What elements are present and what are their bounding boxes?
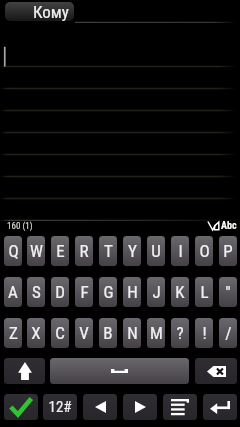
button[interactable]: / xyxy=(219,318,237,348)
button[interactable]: X xyxy=(27,318,45,348)
button[interactable]: N xyxy=(123,318,141,348)
button[interactable]: T xyxy=(99,236,117,266)
button[interactable]: Send xyxy=(4,394,38,420)
button[interactable]: W xyxy=(27,236,45,266)
staticText: Y xyxy=(128,241,137,261)
button[interactable]: " xyxy=(219,277,237,307)
staticText: U xyxy=(151,241,161,261)
button[interactable]: H xyxy=(123,277,141,307)
button[interactable]: M xyxy=(147,318,165,348)
staticText: L xyxy=(200,282,209,302)
button[interactable]: Enter xyxy=(203,394,237,420)
button[interactable]: J xyxy=(147,277,165,307)
staticText: M xyxy=(150,323,163,343)
staticText: 160 (1) xyxy=(7,221,33,232)
button[interactable]: O xyxy=(195,236,213,266)
button[interactable]: Menu xyxy=(163,394,197,420)
staticText: Кому xyxy=(33,2,69,21)
button[interactable]: D xyxy=(51,277,69,307)
button[interactable]: Y xyxy=(123,236,141,266)
button[interactable]: G xyxy=(99,277,117,307)
staticText: W xyxy=(30,241,43,261)
button[interactable]: S xyxy=(27,277,45,307)
staticText: ? xyxy=(176,323,184,343)
staticText: / xyxy=(225,323,232,343)
button[interactable]: K xyxy=(171,277,189,307)
button[interactable]: Cursor right xyxy=(123,394,157,420)
staticText: X xyxy=(31,323,41,343)
button[interactable]: 12# xyxy=(43,394,77,420)
button[interactable]: ? xyxy=(171,318,189,348)
staticText: T xyxy=(104,241,113,261)
button[interactable]: Backspace xyxy=(195,358,237,384)
button[interactable]: B xyxy=(99,318,117,348)
button[interactable]: R xyxy=(75,236,93,266)
staticText: I xyxy=(178,241,183,261)
button[interactable]: Q xyxy=(4,236,22,266)
button[interactable]: E xyxy=(51,236,69,266)
button[interactable]: U xyxy=(147,236,165,266)
button[interactable]: Space xyxy=(50,358,189,384)
button[interactable]: V xyxy=(75,318,93,348)
button[interactable]: Z xyxy=(4,318,22,348)
staticText: Z xyxy=(9,323,18,343)
button[interactable]: A xyxy=(4,277,22,307)
button[interactable]: C xyxy=(51,318,69,348)
button[interactable]: ! xyxy=(195,318,213,348)
button[interactable]: Shift xyxy=(4,358,45,384)
button[interactable]: Cursor left xyxy=(83,394,117,420)
button[interactable]: F xyxy=(75,277,93,307)
staticText: S xyxy=(32,282,41,302)
staticText: Q xyxy=(8,241,19,261)
staticText: F xyxy=(80,282,89,302)
staticText: " xyxy=(225,282,231,302)
staticText: E xyxy=(56,241,65,261)
staticText: P xyxy=(223,241,233,261)
button[interactable]: L xyxy=(195,277,213,307)
staticText: N xyxy=(127,323,138,343)
staticText: D xyxy=(55,282,65,302)
button[interactable]: P xyxy=(219,236,237,266)
staticText: J xyxy=(152,282,161,302)
button[interactable]: Кому xyxy=(5,2,74,21)
staticText: H xyxy=(127,282,138,302)
staticText: Abc xyxy=(221,220,237,232)
staticText: C xyxy=(55,323,65,343)
staticText: O xyxy=(199,241,210,261)
staticText: K xyxy=(175,282,185,302)
staticText: R xyxy=(79,241,89,261)
staticText: V xyxy=(79,323,89,343)
staticText: A xyxy=(8,282,18,302)
button[interactable]: I xyxy=(171,236,189,266)
staticText: 12# xyxy=(48,398,72,416)
staticText: B xyxy=(103,323,113,343)
staticText: G xyxy=(103,282,114,302)
staticText: ! xyxy=(202,323,207,343)
